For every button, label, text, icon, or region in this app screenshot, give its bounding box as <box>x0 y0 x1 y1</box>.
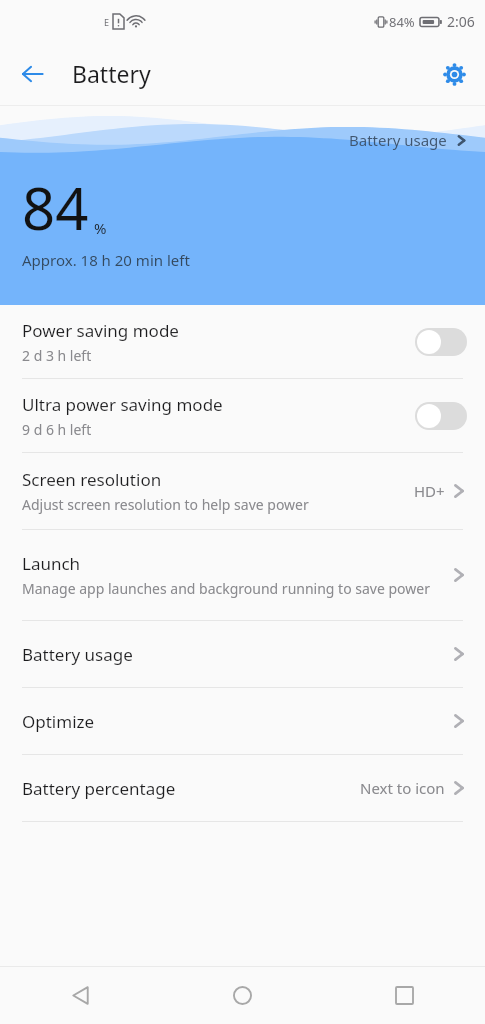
staticText: Power saving mode <box>22 319 179 342</box>
staticText: Manage app launches and background runni… <box>22 579 430 598</box>
button[interactable]: Battery usage <box>345 128 473 152</box>
staticText: Battery <box>72 58 151 89</box>
staticText: 84 <box>22 168 89 247</box>
staticText: 2:06 <box>447 12 475 31</box>
staticText: 2 d 3 h left <box>22 346 92 365</box>
staticText: Approx. 18 h 20 min left <box>22 250 190 270</box>
staticText: 9 d 6 h left <box>22 420 92 439</box>
staticText: Battery usage <box>349 130 447 150</box>
button[interactable]: Back <box>0 967 161 1024</box>
staticText: Optimize <box>22 710 449 733</box>
staticText: % <box>94 218 107 238</box>
button[interactable]: Back <box>10 51 56 97</box>
staticText: 84% <box>389 13 415 31</box>
button[interactable]: Optimize <box>0 688 485 754</box>
staticText: HD+ <box>414 481 445 501</box>
staticText: Battery usage <box>22 643 449 666</box>
button[interactable]: Home <box>161 967 323 1024</box>
staticText: Next to icon <box>360 778 445 798</box>
button[interactable]: Power saving mode <box>0 305 485 378</box>
button[interactable]: Recent apps <box>323 967 485 1024</box>
staticText: Adjust screen resolution to help save po… <box>22 495 309 514</box>
button[interactable]: Screen resolution <box>0 453 485 529</box>
staticText: Ultra power saving mode <box>22 393 223 416</box>
button[interactable]: Toggle <box>415 402 467 430</box>
staticText: Screen resolution <box>22 468 162 491</box>
button[interactable]: Launch <box>0 530 485 620</box>
staticText: Battery percentage <box>22 777 360 800</box>
staticText: E <box>104 16 110 28</box>
button[interactable]: Battery usage <box>0 621 485 687</box>
button[interactable]: Settings <box>431 51 477 97</box>
button[interactable]: Ultra power saving mode <box>0 379 485 452</box>
button[interactable]: Battery percentage <box>0 755 485 821</box>
staticText: Launch <box>22 552 81 575</box>
button[interactable]: Toggle <box>415 328 467 356</box>
